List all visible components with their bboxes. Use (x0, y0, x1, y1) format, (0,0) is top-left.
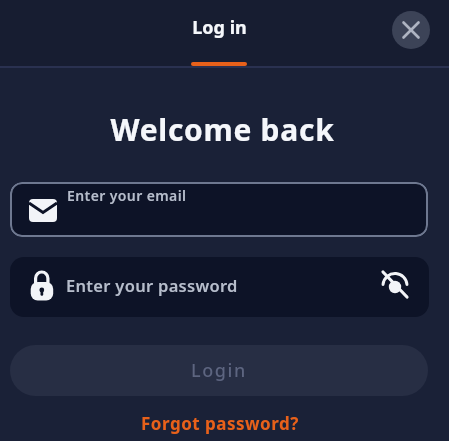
button[interactable]: Enter your email (10, 182, 428, 237)
staticText: Enter your password (66, 274, 238, 296)
staticText: Log in (0, 15, 444, 40)
staticText: Enter your email (67, 186, 187, 205)
staticText: Login (191, 358, 247, 383)
staticText: Welcome back (0, 109, 447, 150)
button[interactable] (392, 11, 430, 49)
button[interactable]: Forgot password? (0, 409, 444, 437)
button[interactable] (377, 267, 413, 303)
staticText: Forgot password? (141, 412, 299, 435)
button[interactable]: Login (10, 345, 428, 396)
button[interactable]: Enter your password (10, 257, 429, 317)
